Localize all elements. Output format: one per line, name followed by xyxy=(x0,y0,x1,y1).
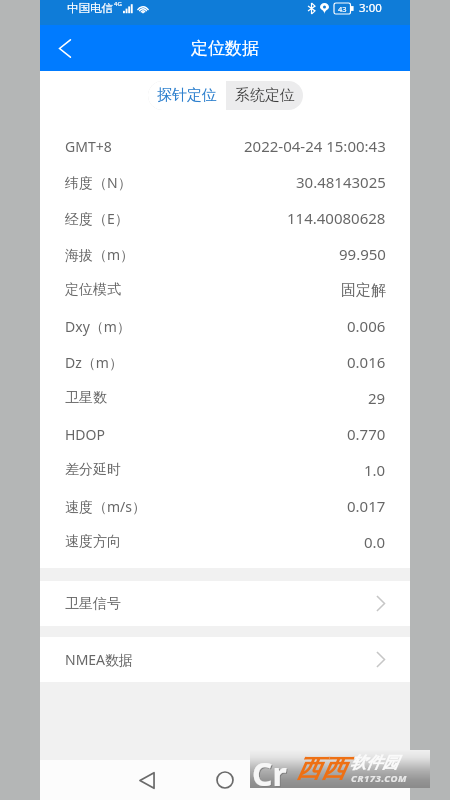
staticText: 探针定位 xyxy=(157,86,217,105)
button[interactable]: Back xyxy=(40,25,86,71)
staticText: GMT+8 xyxy=(65,137,112,156)
staticText: 99.950 xyxy=(339,244,386,264)
staticText: 卫星信号 xyxy=(65,595,121,613)
button[interactable]: HDOP xyxy=(40,416,410,452)
staticText: 纬度（N） xyxy=(65,173,132,192)
button[interactable]: GMT+8 xyxy=(40,128,410,164)
staticText: 2022-04-24 15:00:43 xyxy=(244,136,386,156)
button[interactable]: 纬度（N） xyxy=(40,164,410,200)
staticText: Cr xyxy=(253,753,288,791)
staticText: 定位模式 xyxy=(65,281,121,299)
staticText: 西西 xyxy=(296,753,346,784)
staticText: 3:00 xyxy=(359,0,382,16)
staticText: 30.48143025 xyxy=(296,172,386,192)
button[interactable]: 经度（E） xyxy=(40,200,410,236)
staticText: HDOP xyxy=(65,425,105,444)
button[interactable]: 卫星信号 xyxy=(40,581,410,626)
button[interactable]: 探针定位 xyxy=(148,81,226,110)
staticText: 速度方向 xyxy=(65,533,121,551)
button[interactable]: 海拔（m） xyxy=(40,236,410,272)
button[interactable]: Dxy（m） xyxy=(40,308,410,344)
button[interactable]: 差分延时 xyxy=(40,452,410,488)
staticText: 差分延时 xyxy=(65,461,121,479)
button[interactable]: Home xyxy=(200,760,250,800)
staticText: 0.0 xyxy=(364,532,386,552)
staticText: 系统定位 xyxy=(235,86,295,105)
staticText: NMEA数据 xyxy=(65,650,134,669)
button[interactable]: 系统定位 xyxy=(226,81,303,110)
staticText: 定位数据 xyxy=(191,38,259,59)
staticText: 0.016 xyxy=(347,352,386,372)
staticText: 4G xyxy=(114,0,122,8)
staticText: 43 xyxy=(338,4,347,14)
button[interactable]: Dz（m） xyxy=(40,344,410,380)
staticText: 114.40080628 xyxy=(287,208,386,228)
button[interactable]: 速度（m/s） xyxy=(40,488,410,524)
staticText: 1.0 xyxy=(364,460,386,480)
staticText: Cr xyxy=(252,752,287,790)
staticText: 固定解 xyxy=(341,281,386,300)
staticText: 29 xyxy=(368,388,386,408)
staticText: 海拔（m） xyxy=(65,245,135,264)
staticText: 0.006 xyxy=(347,316,386,336)
staticText: 卫星数 xyxy=(65,389,107,407)
staticText: Dxy（m） xyxy=(65,317,131,336)
staticText: 经度（E） xyxy=(65,209,129,228)
staticText: 速度（m/s） xyxy=(65,497,147,516)
button[interactable]: Back xyxy=(122,760,172,800)
button[interactable]: 卫星数 xyxy=(40,380,410,416)
button[interactable]: 定位模式 xyxy=(40,272,410,308)
button[interactable]: Recents xyxy=(278,760,328,800)
staticText: 0.017 xyxy=(347,496,386,516)
staticText: CR173.COM xyxy=(351,772,408,785)
button[interactable]: NMEA数据 xyxy=(40,637,410,682)
button[interactable]: 速度方向 xyxy=(40,524,410,560)
staticText: Dz（m） xyxy=(65,353,123,372)
staticText: 软件园 xyxy=(350,753,398,773)
staticText: 中国电信 xyxy=(67,1,113,15)
staticText: 0.770 xyxy=(347,424,386,444)
